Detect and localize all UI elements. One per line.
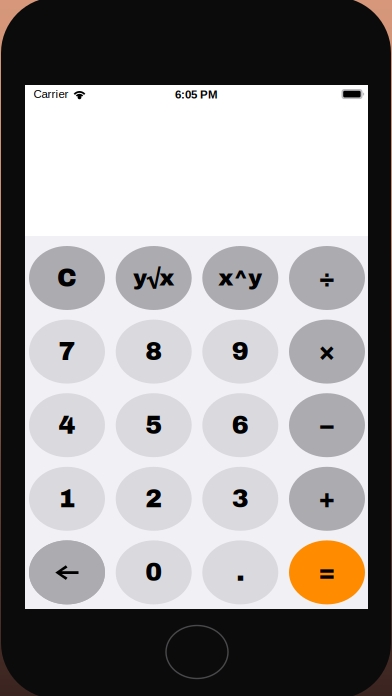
staticText: 6:05 PM xyxy=(175,88,218,101)
button[interactable]: 1 xyxy=(29,467,105,531)
staticText: 7 xyxy=(58,338,75,365)
button[interactable]: 9 xyxy=(202,320,278,384)
button[interactable]: + xyxy=(289,467,365,531)
staticText: 2 xyxy=(145,485,162,513)
staticText: 9 xyxy=(232,338,249,365)
staticText: 6 xyxy=(232,411,249,439)
staticText: . xyxy=(236,559,244,586)
staticText: = xyxy=(318,559,335,586)
staticText: × xyxy=(318,338,335,365)
staticText: ÷ xyxy=(318,264,335,292)
button[interactable]: − xyxy=(289,393,365,457)
staticText: 8 xyxy=(145,338,162,365)
staticText: − xyxy=(318,411,335,439)
button[interactable]: = xyxy=(289,540,365,604)
staticText: 3 xyxy=(232,485,249,513)
staticText: Carrier xyxy=(33,88,68,100)
button[interactable]: Delete xyxy=(29,540,105,604)
button[interactable]: 2 xyxy=(116,467,192,531)
button[interactable]: y√x xyxy=(116,246,192,310)
button[interactable]: x^y xyxy=(202,246,278,310)
button[interactable]: C xyxy=(29,246,105,310)
button[interactable]: 5 xyxy=(116,393,192,457)
staticText: + xyxy=(318,485,335,513)
button[interactable]: 3 xyxy=(202,467,278,531)
staticText: 5 xyxy=(145,411,162,439)
staticText: C xyxy=(57,264,77,292)
button[interactable] xyxy=(29,540,105,604)
staticText: y√x xyxy=(133,266,174,290)
staticText: x^y xyxy=(218,266,262,290)
button[interactable]: 7 xyxy=(29,320,105,384)
button[interactable]: ÷ xyxy=(289,246,365,310)
staticText: 4 xyxy=(58,411,75,439)
staticText: 1 xyxy=(58,485,75,513)
button[interactable]: 4 xyxy=(29,393,105,457)
button[interactable]: 8 xyxy=(116,320,192,384)
button[interactable]: . xyxy=(202,540,278,604)
button[interactable]: × xyxy=(289,320,365,384)
button[interactable]: 0 xyxy=(116,540,192,604)
button[interactable]: 6 xyxy=(202,393,278,457)
staticText: 0 xyxy=(145,559,162,586)
